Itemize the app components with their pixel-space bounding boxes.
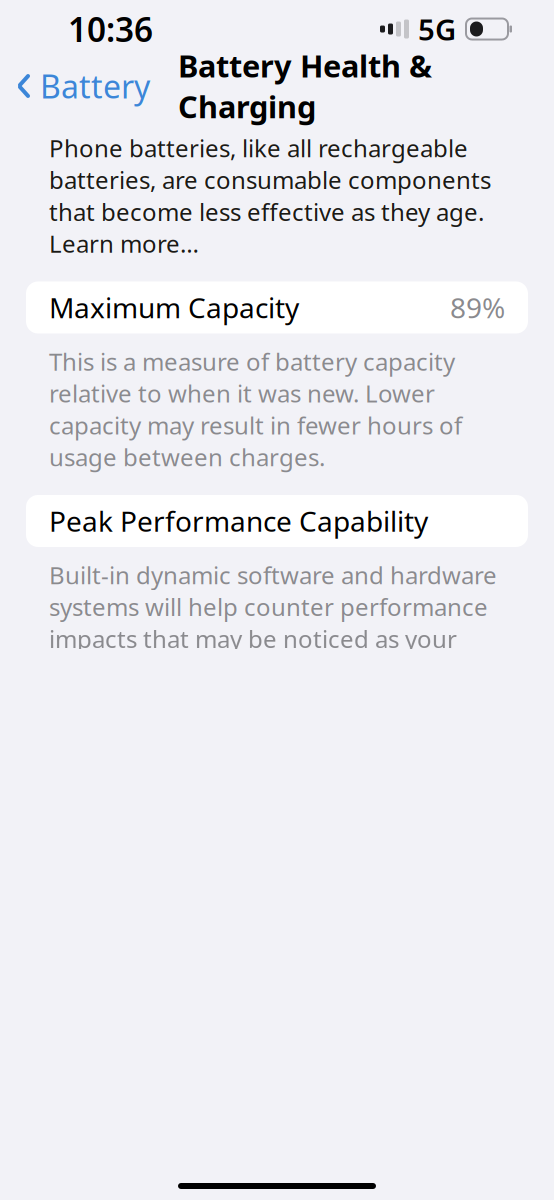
staticText: Battery (40, 65, 150, 107)
staticText: 10:36 (68, 7, 153, 51)
staticText: 5G (418, 9, 456, 48)
staticText: 89% (450, 289, 505, 326)
staticText: Built-in dynamic software and hardware s… (49, 559, 497, 686)
staticText: Maximum Capacity (49, 289, 299, 326)
staticText: Battery Health & Charging (178, 45, 432, 127)
staticText: Peak Performance Capability (49, 502, 428, 540)
staticText: This is a measure of battery capacity re… (49, 345, 462, 473)
staticText: Phone batteries, like all rechargeable b… (49, 132, 491, 259)
button[interactable]: Battery (0, 59, 150, 113)
